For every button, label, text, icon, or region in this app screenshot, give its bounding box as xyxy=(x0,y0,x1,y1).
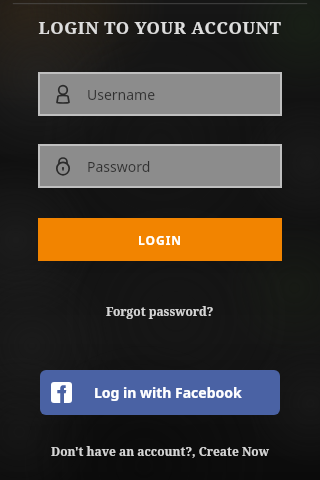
button[interactable]: Password xyxy=(38,144,282,188)
staticText: Forgot password? xyxy=(106,303,214,319)
staticText: Username xyxy=(87,85,156,104)
staticText: Log in with Facebook xyxy=(94,383,242,402)
other: Username xyxy=(53,84,73,104)
staticText: Don't have an account?, Create Now xyxy=(51,443,269,459)
staticText: LOGIN TO YOUR ACCOUNT xyxy=(38,16,282,39)
staticText: LOGIN xyxy=(138,232,183,248)
button[interactable]: Forgot password? xyxy=(96,300,224,322)
button[interactable]: Log in with Facebook xyxy=(40,370,280,415)
staticText: Password xyxy=(87,157,151,176)
other: Password xyxy=(53,156,73,176)
button[interactable]: LOGIN xyxy=(38,218,282,261)
button[interactable]: Don't have an account?, Create Now xyxy=(41,440,279,462)
button[interactable]: Username xyxy=(38,72,282,116)
